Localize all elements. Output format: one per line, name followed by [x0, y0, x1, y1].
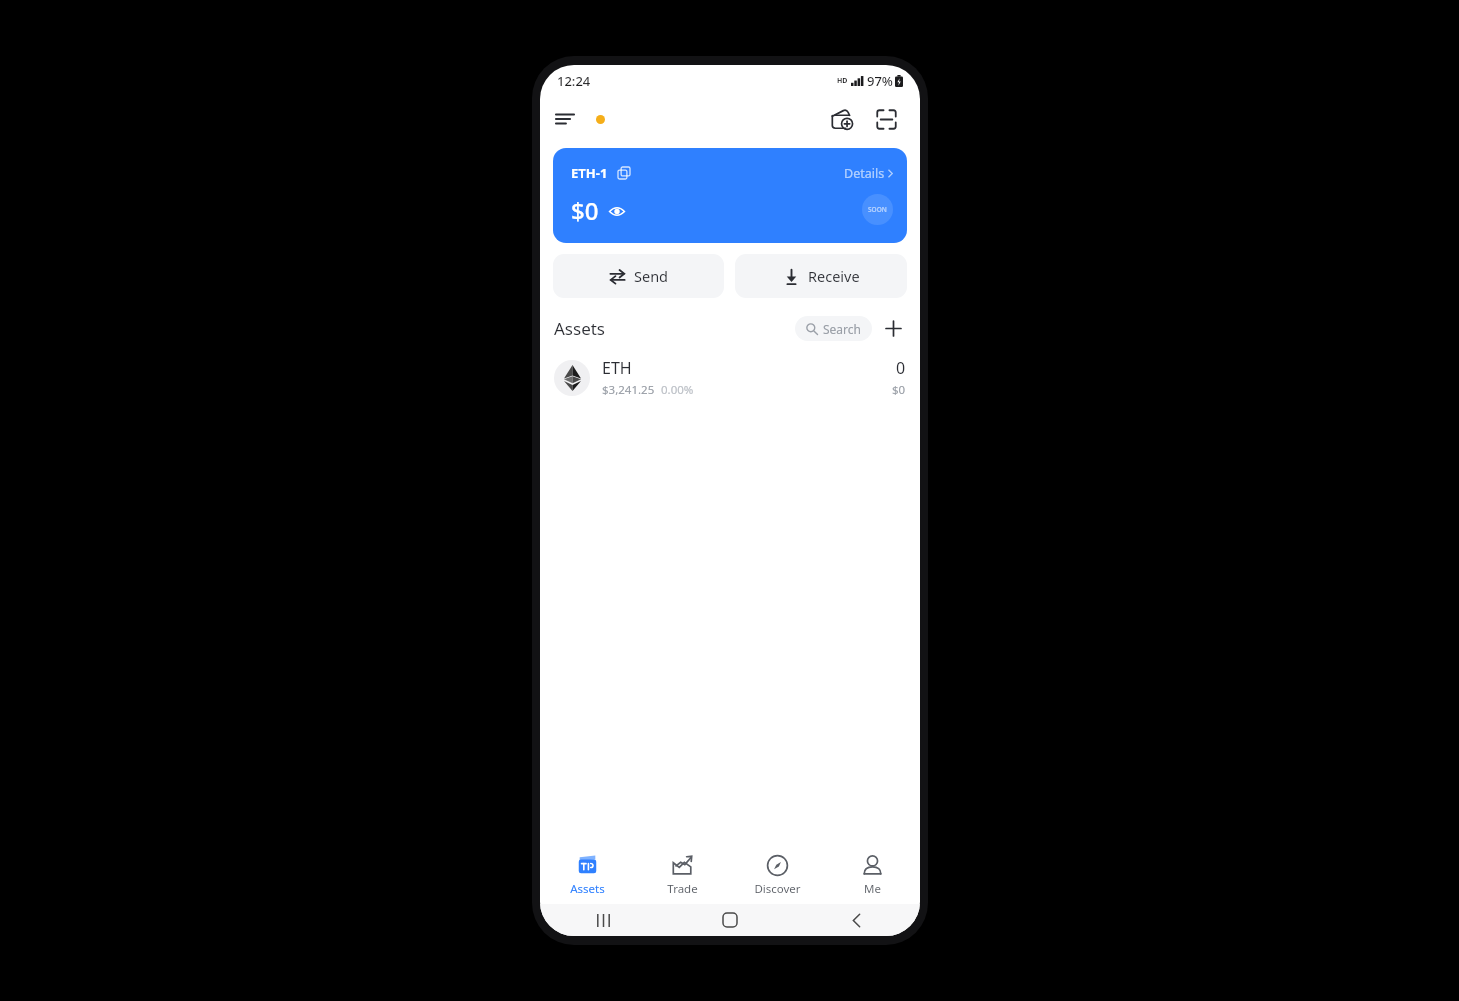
button[interactable]: Discover — [730, 846, 825, 904]
staticText: $0 — [571, 194, 599, 227]
staticText: Send — [634, 266, 669, 286]
staticText: SOON — [868, 205, 887, 214]
button[interactable]: SOON — [553, 148, 907, 243]
staticText: 12:24 — [557, 72, 591, 90]
button[interactable]: ETH — [540, 353, 920, 402]
staticText: Details — [844, 165, 885, 182]
button[interactable]: Assets — [540, 846, 635, 904]
staticText: 0 — [896, 357, 906, 379]
staticText: Assets — [570, 881, 605, 897]
staticText: Trade — [667, 881, 698, 897]
button[interactable]: Scan — [868, 101, 904, 137]
staticText: 97% — [867, 72, 893, 90]
staticText: Me — [864, 881, 881, 897]
button[interactable]: Trade — [635, 846, 730, 904]
staticText: Assets — [554, 317, 606, 340]
button[interactable]: Back — [793, 904, 920, 936]
staticText: Search — [823, 321, 861, 337]
staticText: ETH-1 — [571, 164, 608, 182]
button[interactable]: Search — [795, 316, 872, 341]
staticText: 0.00% — [661, 382, 694, 398]
button[interactable]: Me — [825, 846, 920, 904]
staticText: ETH — [602, 357, 632, 379]
button[interactable]: Menu — [556, 102, 590, 136]
staticText: Receive — [808, 266, 860, 286]
button[interactable]: Add asset — [880, 315, 906, 341]
staticText: $3,241.25 — [602, 382, 655, 398]
staticText: $0 — [892, 382, 906, 398]
button[interactable]: Home — [666, 904, 793, 936]
staticText: Discover — [754, 881, 801, 897]
button[interactable]: Add wallet — [824, 101, 860, 137]
button[interactable]: Send — [553, 254, 724, 298]
button[interactable]: Toggle balance visibility — [607, 201, 627, 221]
button[interactable]: Recents — [540, 904, 666, 936]
staticText: HD — [837, 76, 848, 86]
button[interactable]: Details — [844, 165, 893, 182]
button[interactable]: Copy address — [616, 165, 632, 181]
button[interactable]: Receive — [735, 254, 907, 298]
